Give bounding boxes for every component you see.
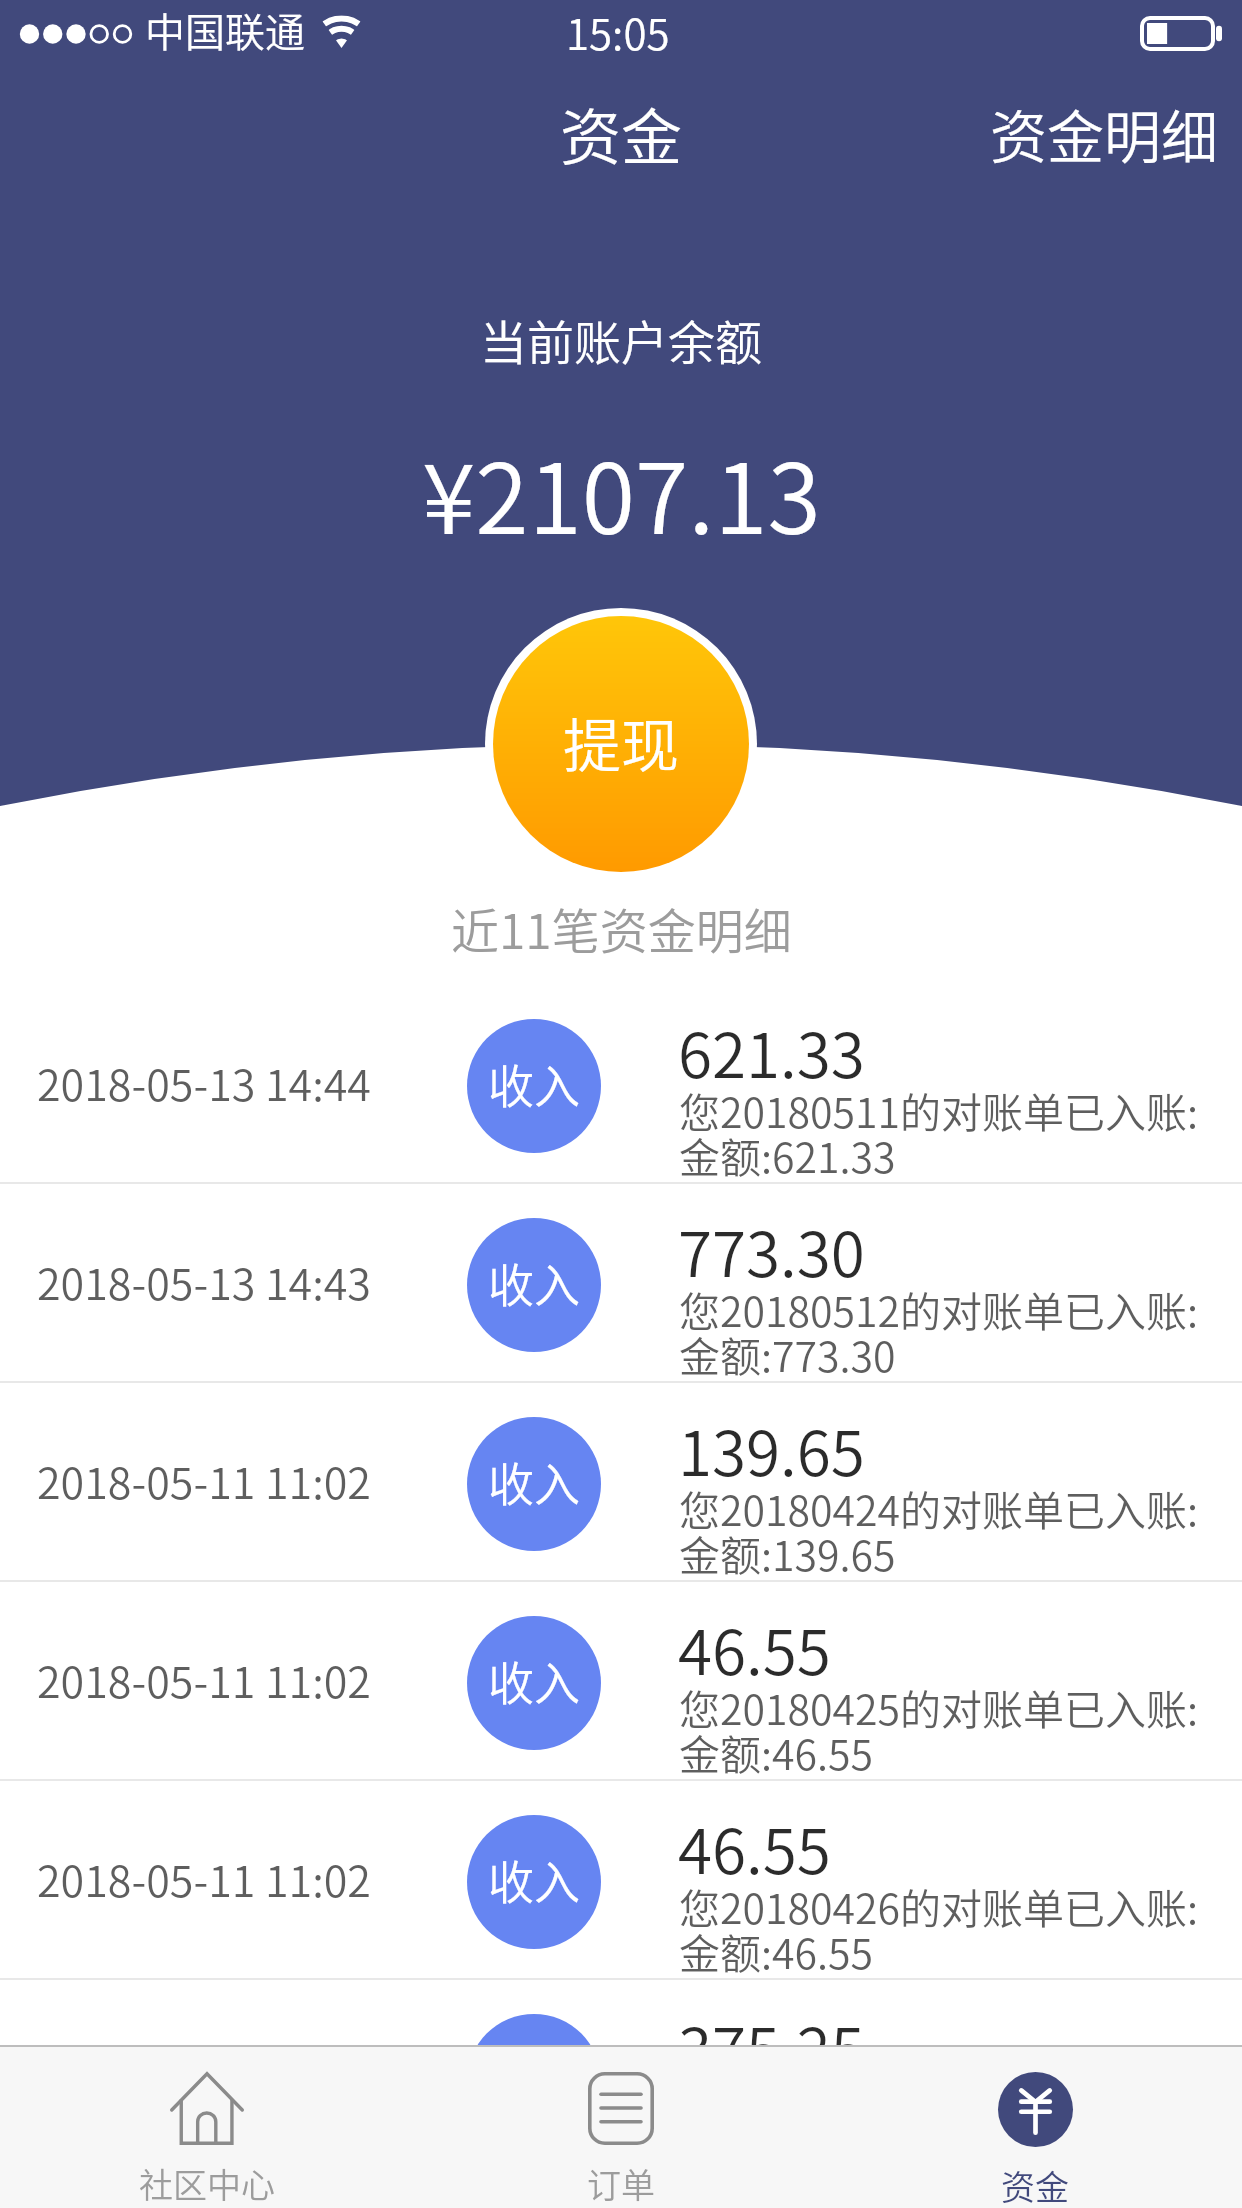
- button[interactable]: 2018-05-11 11:02: [0, 1582, 1242, 1781]
- staticText: 资金: [560, 89, 683, 177]
- staticText: 订单: [587, 2159, 655, 2208]
- staticText: 15:05: [566, 1, 670, 62]
- staticText: 您20180426的对账单已入账:: [679, 1876, 1199, 1935]
- staticText: 您20180427的对账单已入账:: [679, 2075, 1199, 2134]
- button[interactable]: 提现: [493, 616, 749, 872]
- staticText: 金额:46.55: [679, 1722, 874, 1781]
- staticText: 提现: [563, 700, 680, 784]
- staticText: 当前账户余额: [480, 305, 762, 373]
- other: 资金: [998, 2072, 1073, 2147]
- staticText: 金额:46.55: [679, 1921, 874, 1980]
- staticText: 社区中心: [139, 2159, 275, 2208]
- staticText: 621.33: [678, 1006, 865, 1096]
- staticText: 收入: [488, 1249, 580, 1316]
- button[interactable]: 2018-05-11 11:02: [0, 1383, 1242, 1582]
- staticText: 您20180425的对账单已入账:: [679, 1677, 1199, 1736]
- staticText: 收入: [488, 1050, 580, 1117]
- staticText: 773.30: [678, 1205, 865, 1295]
- button[interactable]: 2018-05-13 14:44: [0, 985, 1242, 1184]
- staticText: 中国联通: [145, 1, 305, 59]
- staticText: 您20180511的对账单已入账:: [679, 1080, 1199, 1139]
- staticText: 您20180512的对账单已入账:: [679, 1279, 1199, 1338]
- staticText: 375.25: [678, 2001, 865, 2091]
- staticText: 46.55: [678, 1802, 831, 1892]
- button[interactable]: 资金: [520, 70, 723, 196]
- staticText: 收入: [488, 1647, 580, 1714]
- staticText: 收入: [488, 1846, 580, 1913]
- staticText: 2018-05-11 11:02: [37, 1847, 371, 1909]
- staticText: 2018-05-10 09:21: [37, 2046, 371, 2108]
- button[interactable]: 2018-05-13 14:43: [0, 1184, 1242, 1383]
- staticText: 近11笔资金明细: [451, 893, 792, 963]
- button[interactable]: 资金明细: [960, 73, 1242, 194]
- button[interactable]: 订单: [414, 2047, 828, 2208]
- staticText: 46.55: [678, 1603, 831, 1693]
- other: 订单: [588, 2072, 654, 2145]
- staticText: 2018-05-13 14:44: [37, 1051, 371, 1113]
- staticText: 资金明细: [990, 92, 1218, 175]
- staticText: 金额:139.65: [679, 1523, 896, 1582]
- button[interactable]: 资金: [828, 2047, 1242, 2208]
- staticText: 收入: [488, 2045, 580, 2112]
- staticText: 资金: [1001, 2161, 1069, 2208]
- button[interactable]: 2018-05-10 09:21: [0, 1980, 1242, 2179]
- staticText: ¥2107.13: [422, 421, 821, 561]
- other: 社区中心: [170, 2072, 244, 2145]
- staticText: 139.65: [678, 1404, 865, 1494]
- button[interactable]: 2018-05-11 11:02: [0, 1781, 1242, 1980]
- staticText: 金额:621.33: [679, 1125, 896, 1184]
- button[interactable]: 社区中心: [0, 2047, 414, 2208]
- staticText: 2018-05-13 14:43: [37, 1250, 371, 1312]
- staticText: 金额:773.30: [679, 1324, 896, 1383]
- staticText: 2018-05-11 11:02: [37, 1648, 371, 1710]
- staticText: 收入: [488, 1448, 580, 1515]
- staticText: 2018-05-11 11:02: [37, 1449, 371, 1511]
- staticText: 您20180424的对账单已入账:: [679, 1478, 1199, 1537]
